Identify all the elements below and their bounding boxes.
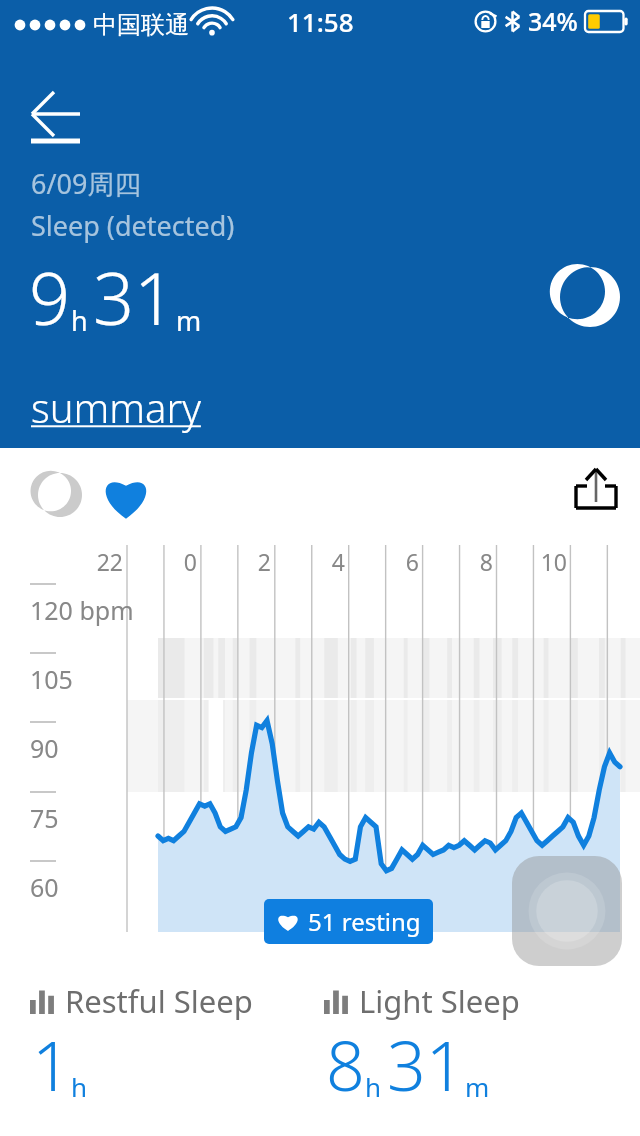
staticText: summary <box>31 380 201 434</box>
staticText: 31 <box>93 248 176 346</box>
button[interactable]: Share <box>570 466 622 518</box>
staticText: Sleep (detected) <box>31 207 235 244</box>
staticText: 10 <box>525 546 567 577</box>
staticText: 11:58 <box>287 4 354 39</box>
staticText: 9 <box>29 248 71 346</box>
button[interactable]: Heart rate <box>100 470 152 522</box>
staticText: 6 <box>377 546 419 577</box>
staticText: 31 <box>387 1018 465 1111</box>
staticText: 4 <box>303 546 345 577</box>
staticText: 90 <box>30 731 59 765</box>
staticText: Restful Sleep <box>65 980 253 1022</box>
button[interactable]: 51 resting <box>264 899 433 944</box>
staticText: h <box>71 302 88 339</box>
button[interactable]: Back <box>18 80 94 148</box>
staticText: 1 <box>32 1018 71 1111</box>
staticText: 60 <box>30 870 59 904</box>
staticText: h <box>71 1069 88 1104</box>
button[interactable]: Light Sleep <box>324 980 520 1073</box>
staticText: 0 <box>155 546 197 577</box>
staticText: 105 <box>30 662 73 696</box>
staticText: 中国联通 <box>93 10 189 40</box>
staticText: 120 bpm <box>30 593 134 627</box>
staticText: 2 <box>229 546 271 577</box>
staticText: m <box>465 1069 490 1104</box>
button[interactable]: Restful Sleep <box>30 980 253 1073</box>
staticText: 6/09周四 <box>31 165 142 202</box>
button[interactable]: summary <box>31 380 201 434</box>
staticText: 8 <box>451 546 493 577</box>
staticText: m <box>176 302 202 339</box>
staticText: h <box>365 1069 382 1104</box>
staticText: 34% <box>528 4 578 38</box>
staticText: Light Sleep <box>359 980 520 1022</box>
staticText: 22 <box>81 546 123 577</box>
staticText: 51 resting <box>308 905 421 938</box>
staticText: 75 <box>30 801 59 835</box>
staticText: 8 <box>326 1018 365 1111</box>
